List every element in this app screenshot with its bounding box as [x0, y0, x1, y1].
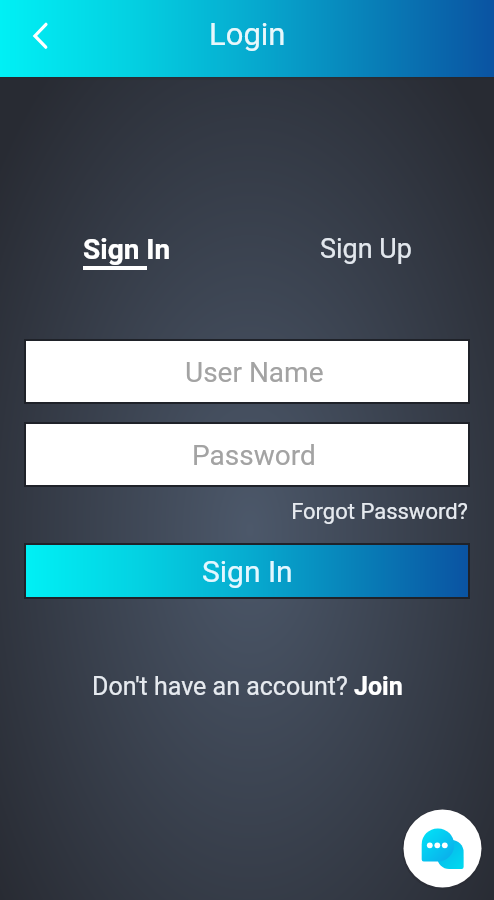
staticText: Don't have an account? — [92, 672, 354, 701]
staticText: Sign In — [83, 233, 171, 266]
staticText: Password — [192, 439, 316, 472]
button[interactable]: Password — [24, 422, 470, 487]
button[interactable]: Chat — [401, 807, 484, 890]
staticText: Sign In — [202, 554, 293, 589]
button[interactable]: Back — [18, 17, 62, 61]
staticText: Login — [209, 16, 286, 52]
button[interactable]: Join — [354, 672, 403, 701]
button[interactable]: Sign In — [24, 543, 470, 599]
staticText: User Name — [185, 356, 324, 389]
button[interactable]: User Name — [24, 339, 470, 404]
button[interactable]: Sign Up — [320, 233, 413, 265]
button[interactable]: Forgot Password? — [0, 499, 468, 525]
button[interactable]: Sign In — [83, 233, 171, 270]
